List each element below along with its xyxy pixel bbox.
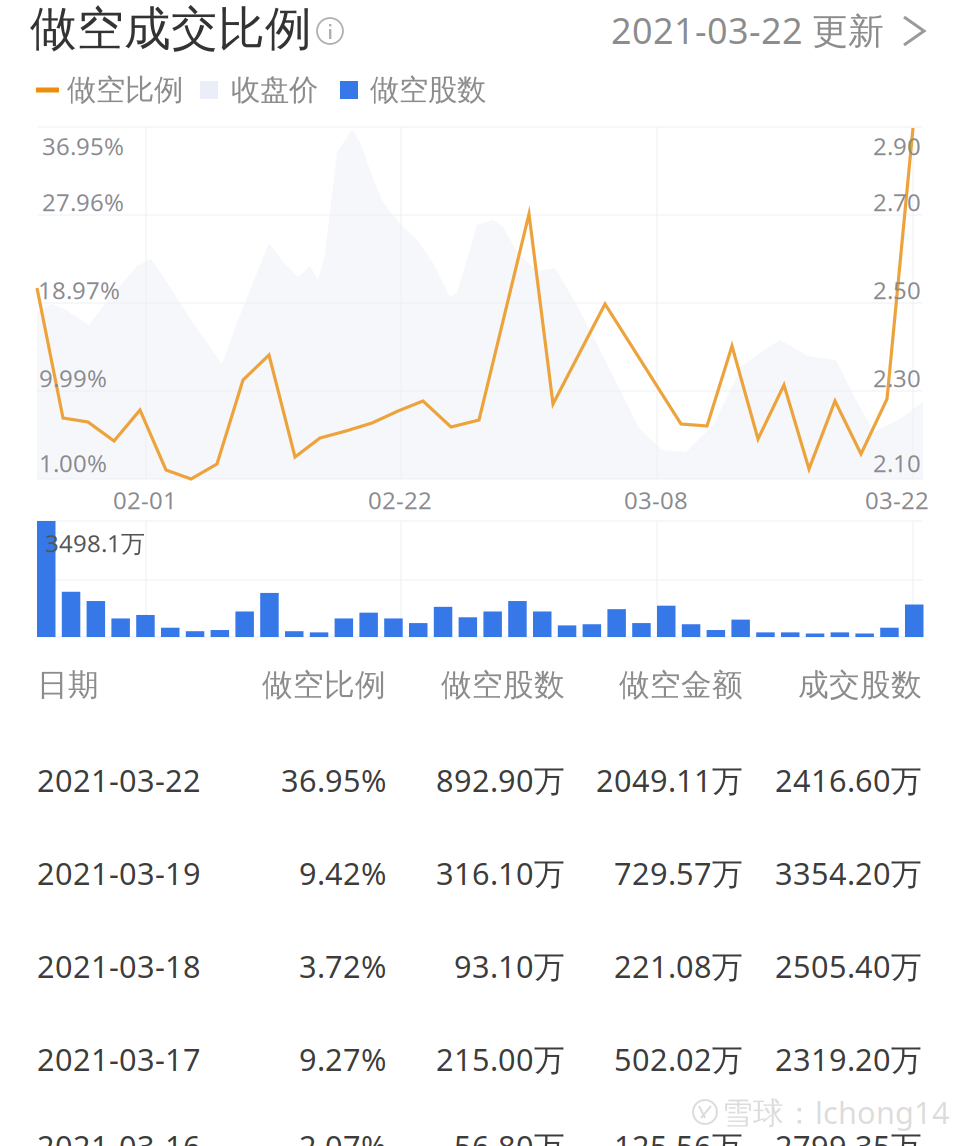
staticText: 18.97% — [38, 274, 120, 306]
staticText: 做空比例 — [262, 666, 386, 704]
staticText: 3354.20万 — [775, 853, 922, 893]
staticText: 1.00% — [39, 447, 107, 479]
staticText: 2.90 — [873, 130, 921, 162]
staticText: 892.90万 — [436, 760, 565, 800]
button[interactable] — [587, 3, 927, 59]
staticText: 2021-03-18 — [37, 946, 201, 986]
staticText: 9.42% — [299, 853, 386, 893]
staticText: 36.95% — [42, 130, 124, 162]
staticText: 2.30 — [873, 362, 921, 394]
staticText: 56.80万 — [454, 1126, 565, 1146]
staticText: 316.10万 — [436, 853, 565, 893]
staticText: 36.95% — [281, 760, 386, 800]
staticText: 2.07% — [299, 1126, 386, 1146]
staticText: 02-01 — [113, 484, 177, 516]
staticText: 2416.60万 — [775, 760, 922, 800]
staticText: 做空股数 — [370, 72, 486, 108]
staticText: 9.99% — [39, 362, 107, 394]
staticText: 9.27% — [299, 1039, 386, 1079]
staticText: 做空比例 — [67, 72, 183, 108]
staticText: 2.70 — [873, 186, 921, 218]
staticText: 221.08万 — [614, 946, 743, 986]
staticText: 做空股数 — [441, 666, 565, 704]
staticText: 2049.11万 — [596, 760, 743, 800]
staticText: 215.00万 — [436, 1039, 565, 1079]
staticText: 2021-03-19 — [37, 853, 201, 893]
staticText: 502.02万 — [614, 1039, 743, 1079]
staticText: 雪球：lchong14 — [722, 1092, 950, 1132]
staticText: 做空成交比例 — [30, 0, 312, 58]
staticText: 成交股数 — [798, 666, 922, 704]
staticText: 03-22 — [865, 484, 929, 516]
staticText: 2021-03-17 — [37, 1039, 201, 1079]
staticText: 27.96% — [42, 186, 124, 218]
staticText: 2505.40万 — [775, 946, 922, 986]
staticText: 2799.35万 — [775, 1126, 922, 1146]
staticText: 收盘价 — [231, 72, 318, 108]
staticText: 3.72% — [299, 946, 386, 986]
staticText: 2021-03-22 — [37, 760, 201, 800]
staticText: 2.10 — [873, 447, 921, 479]
staticText: 729.57万 — [614, 853, 743, 893]
staticText: 3498.1万 — [45, 527, 145, 559]
staticText: 日期 — [37, 666, 99, 704]
staticText: 03-08 — [624, 484, 688, 516]
staticText: 2319.20万 — [775, 1039, 922, 1079]
staticText: 2021-03-22 更新 — [611, 6, 884, 54]
staticText: 93.10万 — [454, 946, 565, 986]
button[interactable]: About short-selling ratio — [308, 9, 352, 53]
staticText: 02-22 — [368, 484, 432, 516]
staticText: 125.56万 — [614, 1126, 743, 1146]
staticText: 2021-03-16 — [37, 1126, 201, 1146]
staticText: 2.50 — [873, 274, 921, 306]
staticText: 做空金额 — [619, 666, 743, 704]
